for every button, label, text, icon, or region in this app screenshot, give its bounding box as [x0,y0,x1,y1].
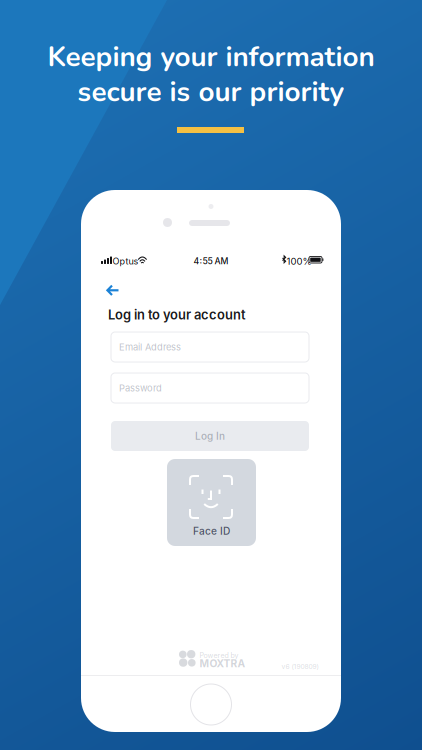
staticText: v6 (190809) [281,662,318,671]
staticText: 4:55 AM [193,256,228,266]
staticText: Face ID [193,525,230,537]
staticText: Keeping your information [47,38,374,76]
button[interactable]: Email Address [111,332,309,362]
staticText: Password [119,382,162,394]
button[interactable]: Log In [111,421,309,451]
button[interactable]: Face ID [167,459,256,546]
button[interactable]: Password [111,373,309,403]
staticText: Email Address [119,341,181,353]
staticText: Log in to your account [108,307,246,323]
staticText: 100% [286,255,311,267]
staticText: Log In [195,430,225,442]
staticText: Powered by [199,651,238,660]
staticText: Optus [112,256,138,267]
staticText: MOXTRA [199,657,245,670]
button[interactable]: Back [102,281,128,301]
staticText: secure is our priority [77,73,344,111]
